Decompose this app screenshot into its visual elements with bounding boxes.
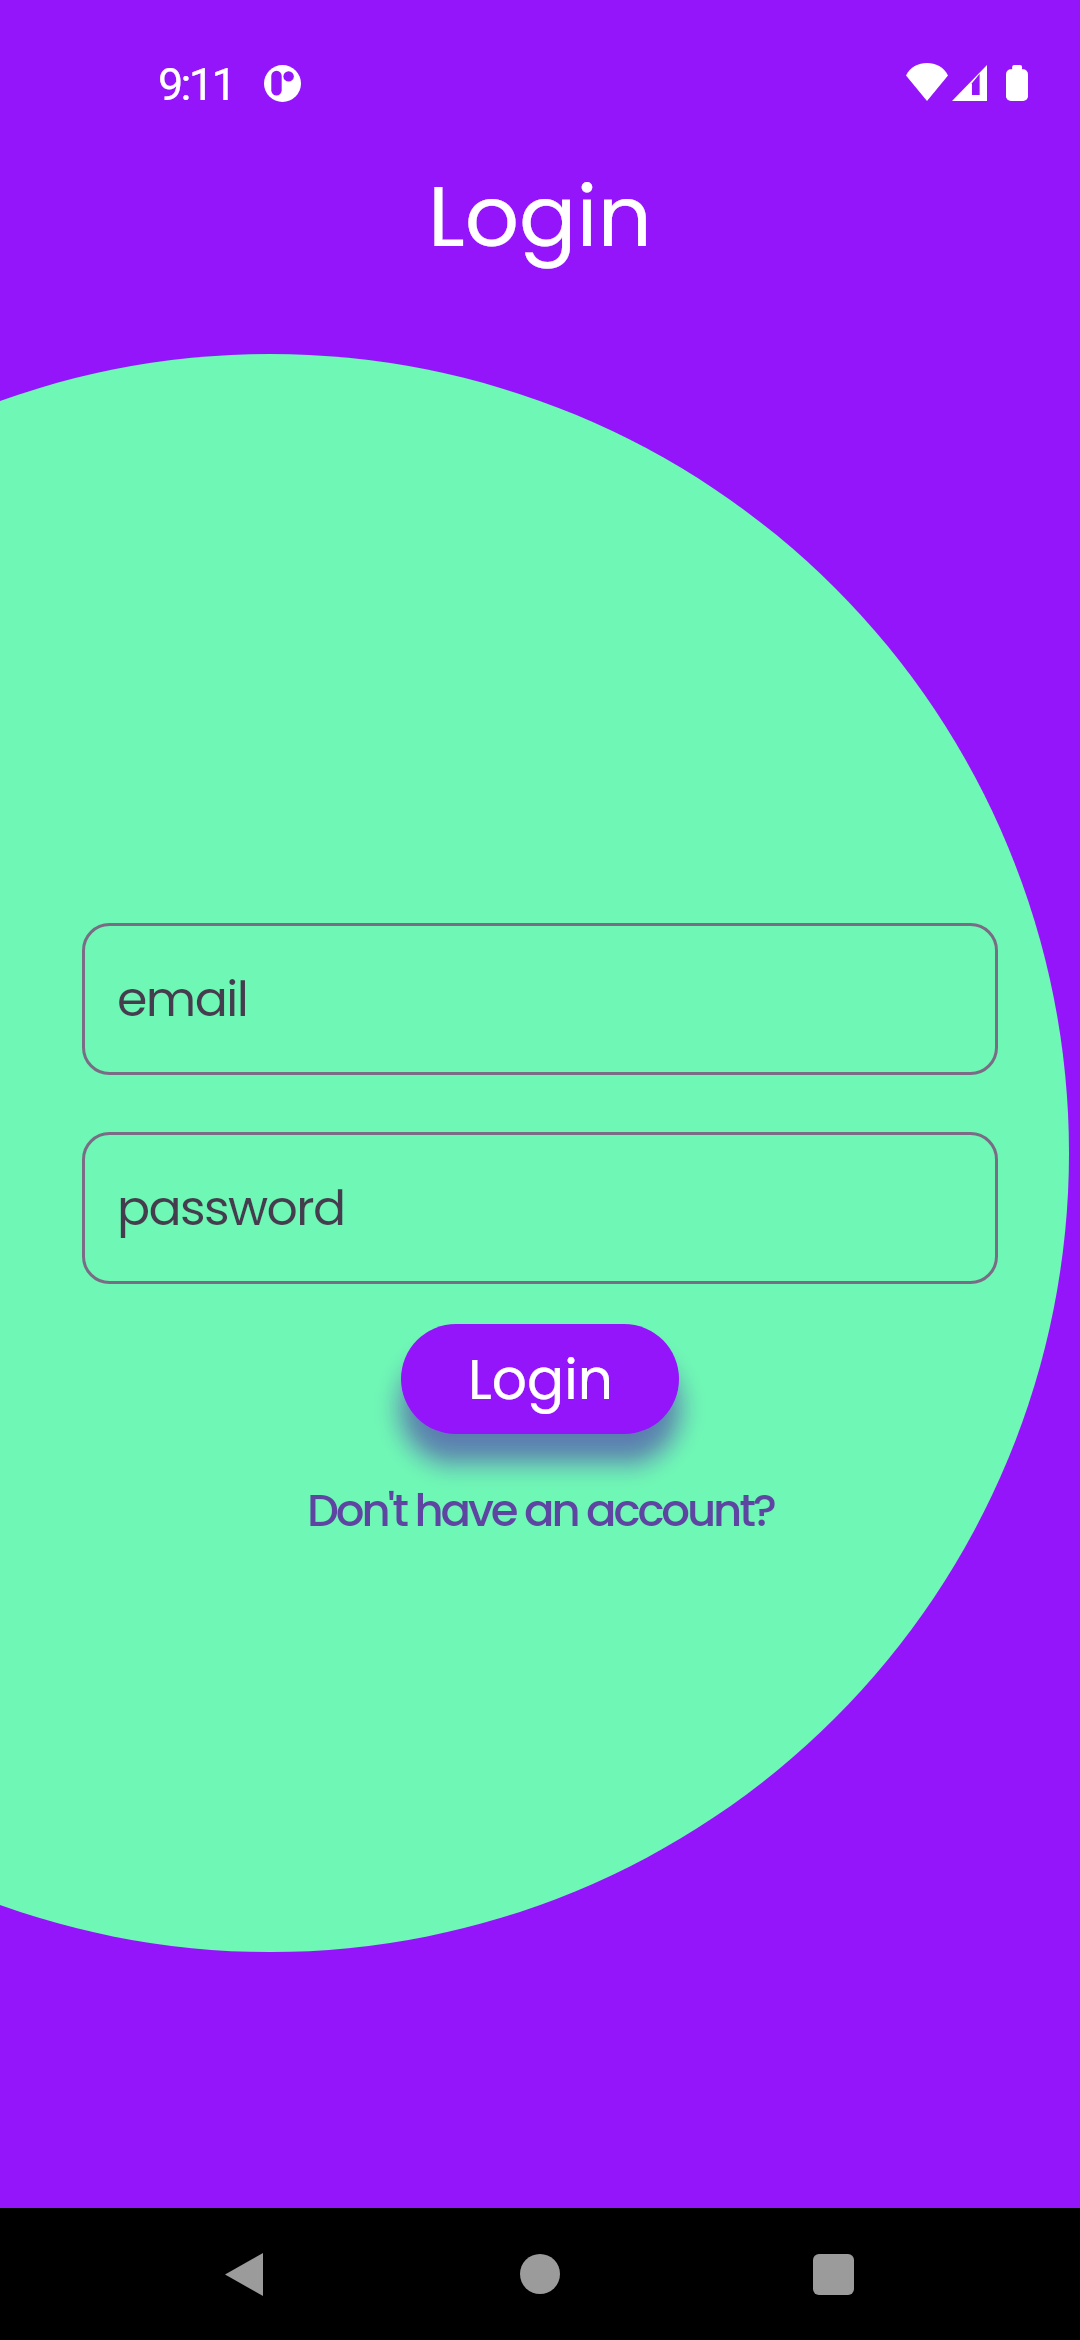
- staticText: email: [117, 965, 248, 1034]
- button[interactable]: Home: [440, 2208, 640, 2340]
- button[interactable]: Login: [401, 1324, 679, 1434]
- button[interactable]: password: [82, 1132, 998, 1284]
- button[interactable]: Recent apps: [733, 2208, 933, 2340]
- button[interactable]: Don't have an account?: [307, 1479, 774, 1542]
- button[interactable]: email: [82, 923, 998, 1075]
- staticText: 9:11: [158, 58, 234, 111]
- staticText: Login: [428, 157, 652, 276]
- button[interactable]: Back: [144, 2208, 344, 2340]
- staticText: Login: [468, 1341, 613, 1418]
- staticText: password: [117, 1174, 345, 1243]
